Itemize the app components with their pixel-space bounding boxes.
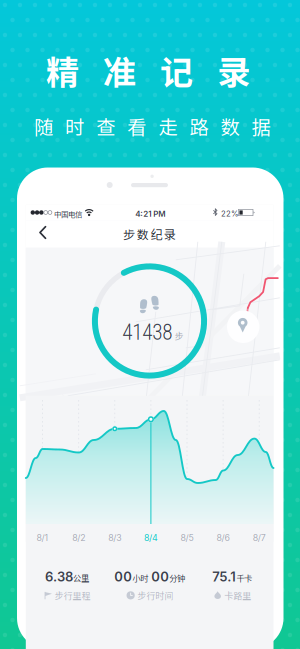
staticText: 75.1 bbox=[212, 569, 236, 585]
staticText: 随时查看走路数据 bbox=[34, 112, 271, 140]
staticText: 中国电信 bbox=[54, 209, 82, 219]
staticText: 00 bbox=[114, 569, 132, 585]
staticText: 8/7 bbox=[253, 533, 266, 543]
staticText: 8/3 bbox=[108, 533, 121, 543]
staticText: 6.38 bbox=[45, 569, 73, 585]
staticText: 8/6 bbox=[217, 533, 230, 543]
staticText: 4:21 PM bbox=[135, 209, 165, 219]
staticText: 精准记录 bbox=[46, 46, 250, 94]
staticText: 8/4 bbox=[144, 533, 158, 543]
staticText: 小时 bbox=[132, 572, 148, 584]
staticText: 公里 bbox=[73, 572, 89, 584]
staticText: 8/5 bbox=[180, 533, 193, 543]
staticText: 步行里程 bbox=[55, 589, 91, 602]
staticText: 00 bbox=[148, 569, 169, 585]
staticText: 步 bbox=[174, 329, 183, 342]
staticText: 步行时间 bbox=[137, 589, 173, 602]
staticText: 8/2 bbox=[72, 533, 85, 543]
staticText: 41438 bbox=[122, 320, 172, 345]
staticText: 8/1 bbox=[37, 533, 49, 543]
staticText: 步数纪录 bbox=[123, 225, 176, 243]
staticText: 卡路里 bbox=[224, 589, 251, 602]
staticText: 分钟 bbox=[169, 572, 185, 584]
staticText: 千卡 bbox=[236, 572, 252, 584]
button[interactable]: 返回 bbox=[33, 221, 59, 247]
staticText: 22% bbox=[221, 209, 239, 218]
